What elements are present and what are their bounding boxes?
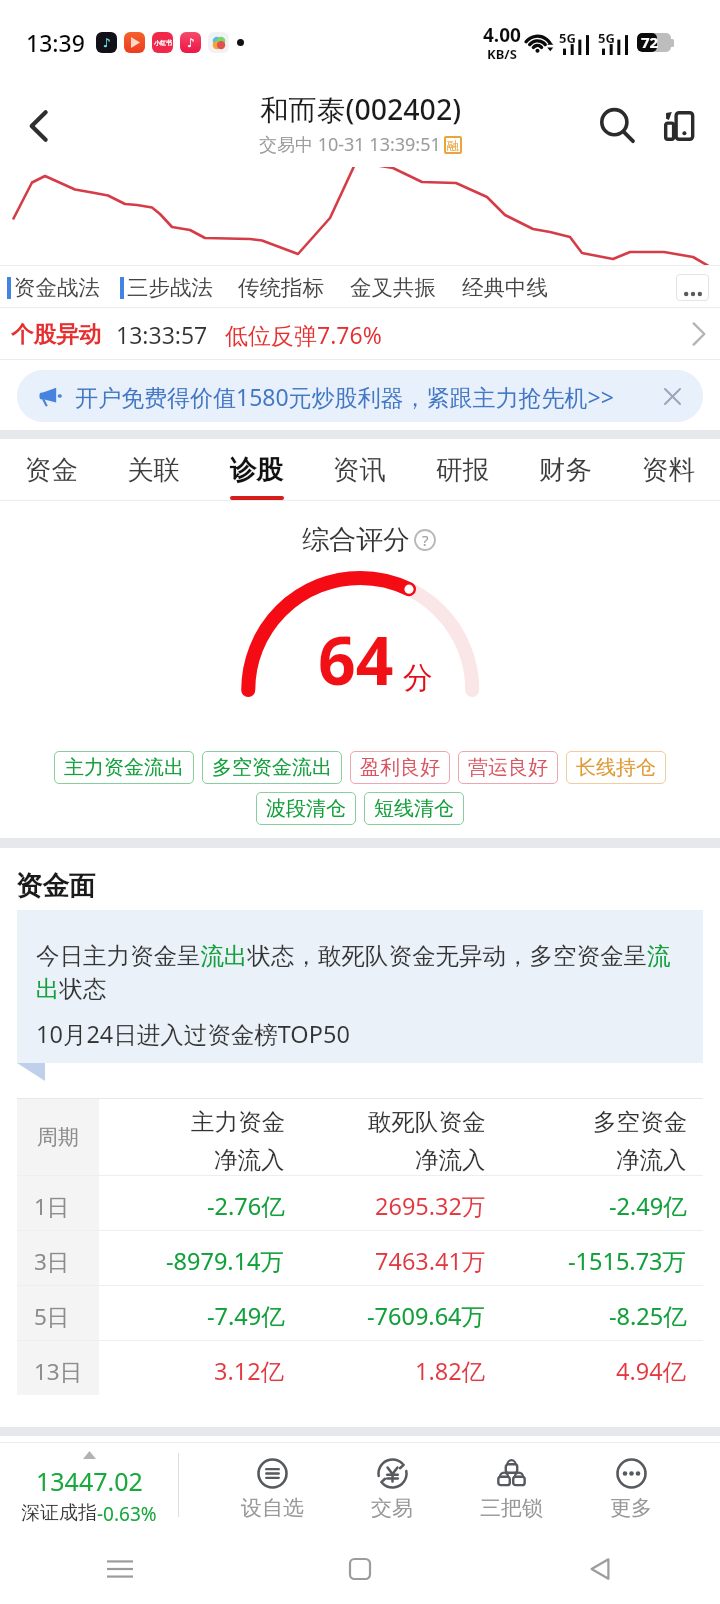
staticText: 研报	[436, 453, 489, 486]
staticText: 13:39	[26, 27, 85, 58]
staticText: 7463.41万	[375, 1245, 486, 1277]
staticText: 经典中线	[462, 274, 548, 301]
button[interactable]: 财务	[514, 439, 617, 501]
staticText: 深证成指	[21, 1501, 97, 1525]
button[interactable]: Back	[480, 1533, 720, 1604]
staticText: 资金	[25, 453, 78, 486]
staticText: 10月24日进入过资金榜TOP50	[36, 1018, 350, 1050]
staticText: ?	[422, 530, 429, 550]
button[interactable]: Home	[240, 1533, 480, 1604]
staticText: 资金面	[16, 869, 96, 902]
staticText: 周期	[37, 1124, 79, 1150]
button[interactable]: 主力资金流出	[54, 751, 194, 784]
staticText: 敢死队资金	[368, 1107, 486, 1137]
button[interactable]: 设自选	[212, 1440, 332, 1537]
button[interactable]: 资料	[617, 439, 720, 501]
staticText: 5日	[34, 1301, 70, 1332]
staticText: 低位反弹7.76%	[225, 319, 382, 350]
button[interactable]: 营运良好	[458, 751, 558, 784]
staticText: 13日	[34, 1356, 83, 1387]
button[interactable]: 更多	[571, 1440, 691, 1537]
staticText: 64	[318, 614, 394, 704]
staticText: KB/S	[487, 45, 517, 63]
button[interactable]: Back	[10, 98, 66, 154]
staticText: 2695.32万	[375, 1190, 486, 1222]
staticText: 小红书	[154, 39, 172, 47]
staticText: -0.63%	[97, 1501, 157, 1527]
staticText: 交易中 10-31 13:39:51	[259, 132, 441, 157]
staticText: -2.49亿	[609, 1190, 687, 1222]
staticText: 关联	[127, 453, 180, 486]
staticText: 三步战法	[127, 274, 213, 301]
staticText: 资料	[642, 453, 695, 486]
button[interactable]: 交易	[332, 1440, 452, 1537]
button[interactable]: 短线清仓	[364, 792, 464, 825]
button[interactable]: Layout options	[650, 97, 708, 155]
button[interactable]: 经典中线	[462, 274, 548, 301]
button[interactable]: 资金战法	[7, 274, 100, 301]
button[interactable]: 开户免费得价值1580元炒股利器，紧跟主力抢先机>>	[17, 370, 703, 422]
staticText: 13447.02	[36, 1464, 143, 1498]
staticText: 综合评分	[302, 523, 410, 557]
staticText: 4.00	[483, 22, 521, 48]
staticText: 资讯	[333, 453, 386, 486]
button[interactable]: 金叉共振	[350, 274, 436, 301]
button[interactable]: 多空资金流出	[202, 751, 342, 784]
staticText: 诊股	[230, 453, 283, 486]
button[interactable]: Recents	[0, 1533, 240, 1604]
staticText: ♪	[103, 36, 111, 50]
button[interactable]: 三把锁	[451, 1440, 571, 1537]
button[interactable]: 长线持仓	[566, 751, 666, 784]
staticText: 主力资金流出	[64, 755, 184, 780]
staticText: ♪	[187, 36, 195, 50]
staticText: -8.25亿	[609, 1300, 687, 1332]
staticText: 开户免费得价值1580元炒股利器，紧跟主力抢先机>>	[75, 381, 614, 412]
staticText: 个股异动	[11, 320, 101, 348]
button[interactable]: 研报	[411, 439, 514, 501]
staticText: 主力资金	[191, 1107, 285, 1137]
staticText: -7.49亿	[207, 1300, 285, 1332]
button[interactable]: 资金	[0, 439, 102, 501]
button[interactable]: 波段清仓	[256, 792, 356, 825]
button[interactable]: 个股异动	[0, 308, 720, 360]
staticText: 多空资金	[593, 1107, 687, 1137]
button[interactable]: Close	[659, 383, 685, 409]
button[interactable]: Search	[588, 97, 646, 155]
staticText: 三把锁	[480, 1495, 543, 1521]
button[interactable]: 三步战法	[120, 274, 213, 301]
staticText: 融	[447, 138, 459, 153]
staticText: 72	[641, 33, 659, 51]
staticText: 营运良好	[468, 755, 548, 780]
staticText: 4.94亿	[616, 1355, 687, 1387]
staticText: 分	[403, 659, 433, 697]
staticText: 短线清仓	[374, 796, 454, 821]
staticText: 净流入	[415, 1145, 486, 1175]
button[interactable]: 关联	[102, 439, 205, 501]
staticText: 13:33:57	[116, 319, 208, 350]
staticText: -2.76亿	[207, 1190, 285, 1222]
staticText: 波段清仓	[266, 796, 346, 821]
staticText: 5G	[559, 29, 576, 47]
button[interactable]: 资讯	[308, 439, 411, 501]
button[interactable]: 传统指标	[238, 274, 324, 301]
staticText: 多空资金流出	[212, 755, 332, 780]
staticText: 3.12亿	[214, 1355, 285, 1387]
staticText: 金叉共振	[350, 274, 436, 301]
staticText: 今日主力资金呈流出状态，敢死队资金无异动，多空资金呈流出状态	[36, 941, 685, 1004]
button[interactable]: 诊股	[205, 439, 308, 501]
staticText: 更多	[610, 1495, 652, 1521]
staticText: 传统指标	[238, 274, 324, 301]
staticText: -1515.73万	[568, 1245, 687, 1277]
button[interactable]: 盈利良好	[350, 751, 450, 784]
staticText: 净流入	[214, 1145, 285, 1175]
button[interactable]: 13447.02	[0, 1451, 178, 1527]
staticText: 和而泰(002402)	[260, 90, 462, 129]
staticText: 交易	[371, 1495, 413, 1521]
staticText: -8979.14万	[166, 1245, 285, 1277]
staticText: 1日	[34, 1191, 70, 1222]
staticText: 财务	[539, 453, 592, 486]
staticText: 设自选	[241, 1495, 304, 1521]
button[interactable]: More strategies	[676, 274, 709, 301]
staticText: 资金战法	[14, 274, 100, 301]
staticText: 5G	[598, 29, 615, 47]
